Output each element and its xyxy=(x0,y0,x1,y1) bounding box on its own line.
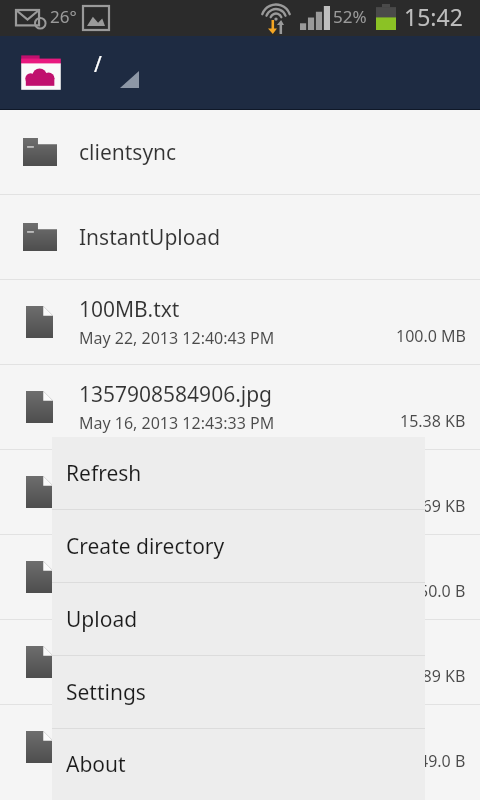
button[interactable]: 1357908597897.jpg xyxy=(0,450,480,534)
staticText: Refresh xyxy=(66,459,142,488)
button[interactable]: clientsync xyxy=(0,110,480,194)
staticText: 1357908597897.jpg xyxy=(79,465,273,494)
staticText: About xyxy=(66,750,126,779)
button[interactable]: Path / xyxy=(88,45,158,101)
staticText: Create directory xyxy=(66,532,225,561)
staticText: 15.38 KB xyxy=(400,410,466,432)
button[interactable]: 1357908584906.jpg xyxy=(0,365,480,449)
staticText: 15:42 xyxy=(404,1,463,32)
staticText: 52% xyxy=(333,5,367,28)
button[interactable]: notes.txt xyxy=(0,705,480,789)
button[interactable]: Refresh xyxy=(52,437,425,509)
button[interactable]: IMG_2013.jpg xyxy=(0,620,480,704)
staticText: 100.0 MB xyxy=(396,325,466,347)
button[interactable]: Create directory xyxy=(52,510,425,582)
staticText: May 16, 2013 12:43:33 PM xyxy=(79,412,275,434)
staticText: May 16, 2013 12:43:37 PM xyxy=(79,497,275,519)
staticText: 1357908584906.jpg xyxy=(79,380,273,409)
staticText: May 20, 2013 11:21:04 AM xyxy=(79,667,275,689)
staticText: 49.0 B xyxy=(419,750,466,772)
staticText: 22.89 KB xyxy=(400,665,466,687)
staticText: 17.69 KB xyxy=(400,495,466,517)
staticText: 50B.txt xyxy=(79,550,149,579)
staticText: IMG_2013.jpg xyxy=(79,635,215,664)
staticText: May 19, 2013 09:02:55 AM xyxy=(79,752,275,774)
button[interactable]: Settings xyxy=(52,656,425,728)
staticText: 50.0 B xyxy=(419,580,466,602)
staticText: 100MB.txt xyxy=(79,295,180,324)
staticText: InstantUpload xyxy=(79,223,221,252)
staticText: Upload xyxy=(66,605,138,634)
button[interactable]: Upload xyxy=(52,583,425,655)
staticText: 26° xyxy=(50,5,77,28)
button[interactable]: ownCloud home xyxy=(12,47,70,99)
staticText: notes.txt xyxy=(79,720,167,749)
staticText: Settings xyxy=(66,678,146,707)
staticText: clientsync xyxy=(79,138,177,167)
button[interactable]: InstantUpload xyxy=(0,195,480,279)
staticText: May 22, 2013 12:40:43 PM xyxy=(79,327,275,349)
staticText: / xyxy=(94,50,102,79)
button[interactable]: About xyxy=(52,729,425,800)
button[interactable]: 50B.txt xyxy=(0,535,480,619)
button[interactable]: 100MB.txt xyxy=(0,280,480,364)
staticText: May 22, 2013 12:39:11 PM xyxy=(79,582,275,604)
